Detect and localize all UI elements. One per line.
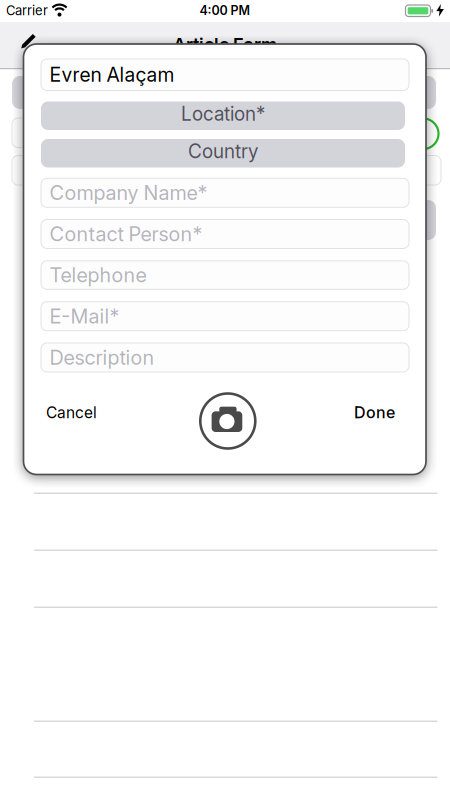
button[interactable]: Company Name* bbox=[41, 178, 409, 207]
button[interactable]: Contact Person* bbox=[41, 219, 409, 248]
staticText: Carrier bbox=[6, 3, 48, 18]
staticText: Telephone bbox=[49, 263, 146, 287]
button[interactable]: Description bbox=[41, 343, 409, 372]
button[interactable] bbox=[200, 393, 255, 448]
staticText: 4:00 PM bbox=[199, 3, 250, 18]
button[interactable]: Evren Alaçam bbox=[41, 59, 409, 90]
button[interactable]: Telephone bbox=[41, 261, 409, 289]
staticText: Evren Alaçam bbox=[49, 63, 174, 87]
button[interactable]: Done bbox=[354, 403, 395, 422]
staticText: Country bbox=[188, 140, 258, 163]
staticText: Done bbox=[354, 403, 395, 422]
staticText: Location* bbox=[181, 102, 265, 125]
staticText: Article Form bbox=[173, 34, 277, 55]
button[interactable]: E-Mail* bbox=[41, 302, 409, 331]
button[interactable]: Country bbox=[41, 139, 405, 167]
staticText: Description bbox=[49, 345, 154, 370]
staticText: Contact Person* bbox=[49, 222, 202, 246]
button[interactable]: Location* bbox=[41, 101, 405, 130]
button[interactable]: Cancel bbox=[46, 403, 97, 422]
button[interactable] bbox=[20, 29, 40, 49]
staticText: E-Mail* bbox=[49, 304, 119, 328]
staticText: Company Name* bbox=[49, 181, 207, 205]
staticText: Cancel bbox=[46, 403, 97, 422]
